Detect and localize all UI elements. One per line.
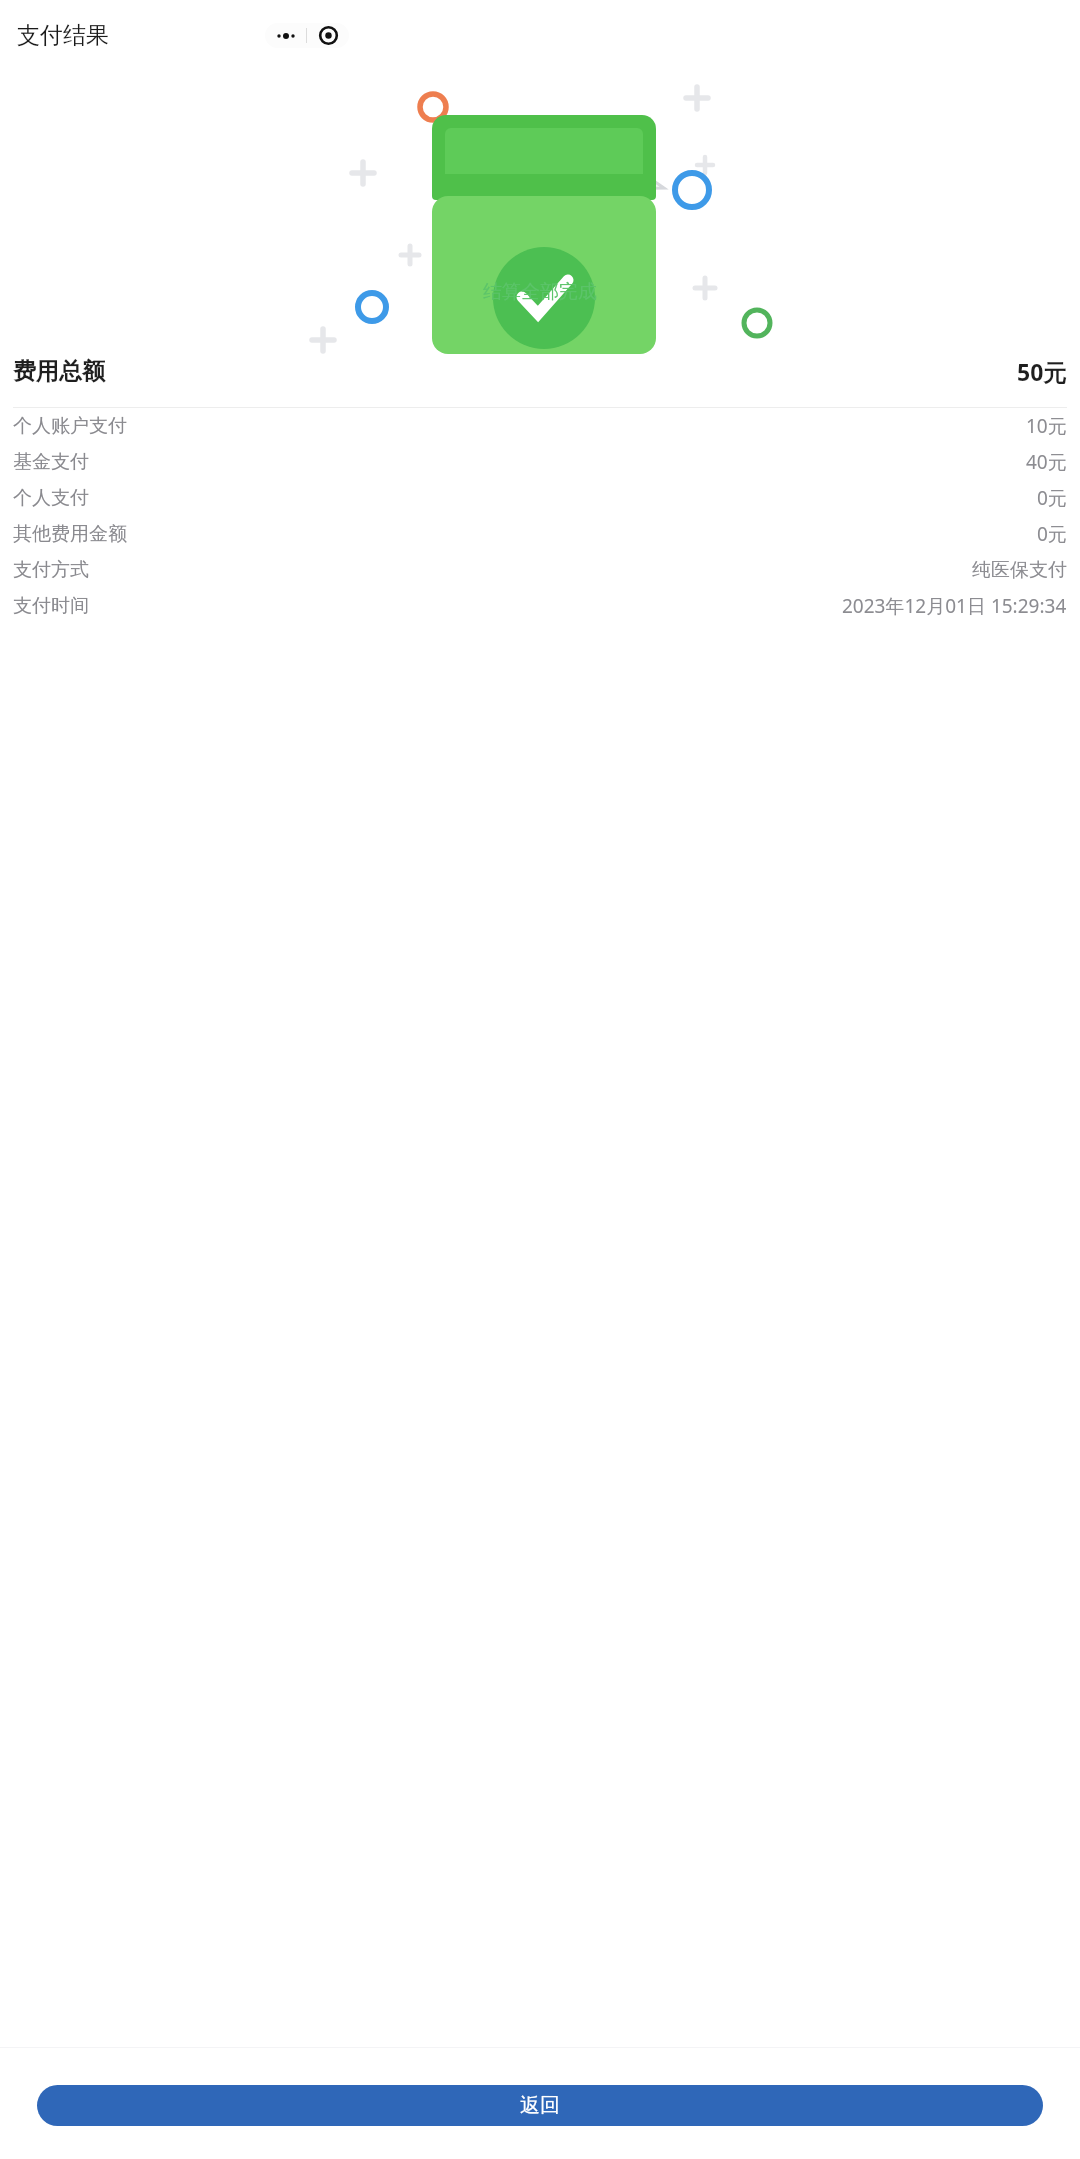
staticText: 支付方式 (13, 558, 89, 582)
staticText: 个人账户支付 (13, 414, 127, 438)
button[interactable]: 个人账户支付 (0, 408, 1080, 444)
staticText: 支付时间 (13, 594, 89, 618)
button[interactable]: Capsule target (307, 26, 349, 45)
staticText: 2023年12月01日 15:29:34 (842, 593, 1067, 619)
button[interactable]: 基金支付 (0, 444, 1080, 480)
staticText: 基金支付 (13, 450, 89, 474)
button[interactable]: 个人支付 (0, 480, 1080, 516)
staticText: 50元 (1017, 356, 1067, 387)
staticText: 返回 (520, 2093, 560, 2118)
button[interactable]: More options (265, 31, 306, 41)
staticText: 0元 (1037, 485, 1067, 511)
staticText: 其他费用金额 (13, 522, 127, 546)
button[interactable]: 其他费用金额 (0, 516, 1080, 552)
staticText: 40元 (1026, 449, 1067, 475)
staticText: 纯医保支付 (972, 558, 1067, 582)
staticText: 支付结果 (17, 21, 109, 50)
button[interactable]: 支付时间 (0, 588, 1080, 624)
staticText: 费用总额 (13, 357, 105, 386)
staticText: 10元 (1026, 413, 1067, 439)
staticText: 0元 (1037, 521, 1067, 547)
button[interactable]: 返回 (37, 2085, 1043, 2126)
staticText: 个人支付 (13, 486, 89, 510)
staticText: 结算全部完成 (0, 280, 1080, 304)
button[interactable]: 费用总额 (0, 352, 1080, 391)
button[interactable]: 支付方式 (0, 552, 1080, 588)
